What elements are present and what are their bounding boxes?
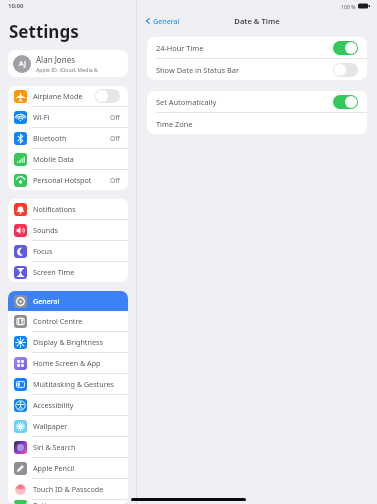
button[interactable]: Multitasking & Gestures bbox=[8, 374, 128, 394]
staticText: Wi-Fi bbox=[33, 112, 50, 122]
button[interactable]: Back to General bbox=[137, 14, 184, 28]
button[interactable]: Bluetooth bbox=[8, 128, 128, 148]
button[interactable]: Time Zone bbox=[147, 113, 367, 134]
button[interactable] bbox=[95, 89, 120, 103]
button[interactable] bbox=[333, 41, 358, 55]
staticText: Siri & Search bbox=[33, 442, 76, 452]
staticText: Time Zone bbox=[156, 119, 193, 129]
button[interactable]: Set Automatically bbox=[147, 91, 367, 112]
button[interactable] bbox=[333, 63, 358, 77]
button[interactable]: Mobile Data bbox=[8, 149, 128, 169]
staticText: Focus bbox=[33, 246, 53, 256]
staticText: Multitasking & Gestures bbox=[33, 379, 114, 389]
staticText: Off bbox=[110, 176, 120, 185]
staticText: General bbox=[153, 16, 180, 26]
staticText: Apple Pencil bbox=[33, 463, 75, 473]
staticText: Sounds bbox=[33, 225, 59, 235]
staticText: General bbox=[33, 296, 60, 306]
button[interactable]: Accessibility bbox=[8, 395, 128, 415]
button[interactable]: Siri & Search bbox=[8, 437, 128, 457]
button[interactable]: Notifications bbox=[8, 199, 128, 219]
button[interactable]: 24-Hour Time bbox=[147, 37, 367, 58]
button[interactable]: Control Centre bbox=[8, 311, 128, 331]
staticText: Display & Brightness bbox=[33, 337, 103, 347]
staticText: Airplane Mode bbox=[33, 91, 83, 101]
staticText: Show Date in Status Bar bbox=[156, 65, 239, 75]
staticText: 10:00 bbox=[8, 2, 24, 10]
button[interactable]: Sounds bbox=[8, 220, 128, 240]
staticText: 24-Hour Time bbox=[156, 43, 204, 53]
button[interactable]: General bbox=[8, 291, 128, 311]
button[interactable]: Display & Brightness bbox=[8, 332, 128, 352]
button[interactable]: Battery bbox=[8, 500, 128, 504]
button[interactable]: Wi-Fi bbox=[8, 107, 128, 127]
button[interactable]: Focus bbox=[8, 241, 128, 261]
staticText: Mobile Data bbox=[33, 154, 74, 164]
staticText: Screen Time bbox=[33, 267, 75, 277]
staticText: Off bbox=[110, 134, 120, 143]
staticText: Wallpaper bbox=[33, 421, 68, 431]
staticText: Settings bbox=[9, 20, 79, 43]
staticText: Touch ID & Passcode bbox=[33, 484, 104, 494]
staticText: Date & Time bbox=[234, 16, 280, 26]
staticText: Apple ID, iCloud, Media & Purchases bbox=[36, 66, 123, 73]
button[interactable]: Personal Hotspot bbox=[8, 170, 128, 190]
button[interactable]: Touch ID & Passcode bbox=[8, 479, 128, 499]
button[interactable]: Wallpaper bbox=[8, 416, 128, 436]
button[interactable]: Home Screen & App Library bbox=[8, 353, 128, 373]
staticText: AJ bbox=[19, 59, 26, 69]
staticText: Accessibility bbox=[33, 400, 74, 410]
button[interactable]: Screen Time bbox=[8, 262, 128, 282]
staticText: Notifications bbox=[33, 204, 76, 214]
staticText: 100 % bbox=[341, 3, 356, 10]
button[interactable]: Apple Pencil bbox=[8, 458, 128, 478]
button[interactable]: Airplane Mode bbox=[8, 86, 128, 106]
staticText: Home Screen & App Library bbox=[33, 358, 120, 368]
staticText: Personal Hotspot bbox=[33, 175, 92, 185]
staticText: Set Automatically bbox=[156, 97, 217, 107]
staticText: Off bbox=[110, 113, 120, 122]
staticText: Bluetooth bbox=[33, 133, 67, 143]
button[interactable]: AJ bbox=[8, 50, 128, 77]
button[interactable] bbox=[333, 95, 358, 109]
button[interactable]: Show Date in Status Bar bbox=[147, 59, 367, 80]
staticText: Control Centre bbox=[33, 316, 83, 326]
staticText: Battery bbox=[33, 500, 58, 504]
staticText: Alan Jones bbox=[36, 54, 75, 65]
